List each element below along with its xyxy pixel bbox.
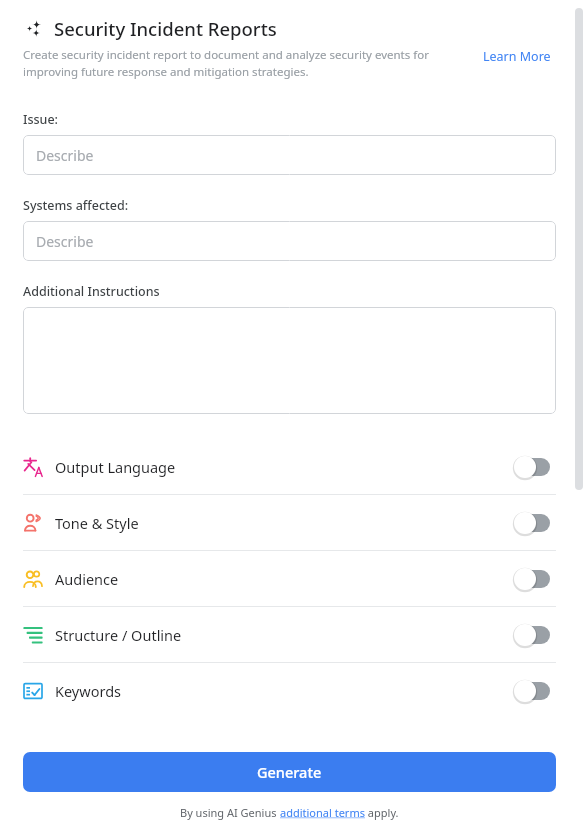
- button[interactable]: Toggle: [512, 567, 556, 591]
- staticText: Describe: [36, 146, 94, 165]
- staticText: Create security incident report to docum…: [23, 47, 475, 80]
- staticText: Systems affected:: [23, 197, 129, 214]
- staticText: Structure / Outline: [55, 625, 182, 645]
- button[interactable]: additional terms: [280, 805, 365, 820]
- button[interactable]: Structure / Outline: [23, 607, 556, 662]
- staticText: By using AI Genius: [180, 805, 280, 820]
- staticText: Learn More: [483, 48, 551, 65]
- staticText: Security Incident Reports: [54, 16, 277, 41]
- button[interactable]: Keywords: [23, 663, 556, 718]
- staticText: Issue:: [23, 111, 58, 128]
- staticText: Audience: [55, 569, 119, 589]
- staticText: Additional Instructions: [23, 283, 160, 300]
- staticText: Generate: [257, 762, 322, 782]
- staticText: Keywords: [55, 681, 121, 701]
- button[interactable]: Toggle: [512, 623, 556, 647]
- button[interactable]: Output Language: [23, 439, 556, 494]
- button[interactable]: Toggle: [512, 679, 556, 703]
- staticText: Tone & Style: [55, 513, 139, 533]
- button[interactable]: Toggle: [512, 455, 556, 479]
- button[interactable]: Generate: [23, 752, 556, 792]
- staticText: additional terms: [280, 805, 365, 820]
- button[interactable]: Audience: [23, 551, 556, 606]
- button[interactable]: Tone & Style: [23, 495, 556, 550]
- button[interactable]: Describe: [23, 135, 556, 175]
- staticText: apply.: [365, 805, 399, 820]
- button[interactable]: Describe: [23, 221, 556, 261]
- button[interactable]: Toggle: [512, 511, 556, 535]
- button[interactable]: [23, 307, 556, 414]
- button[interactable]: Learn More: [483, 47, 551, 65]
- staticText: Describe: [36, 232, 94, 251]
- staticText: Output Language: [55, 457, 176, 477]
